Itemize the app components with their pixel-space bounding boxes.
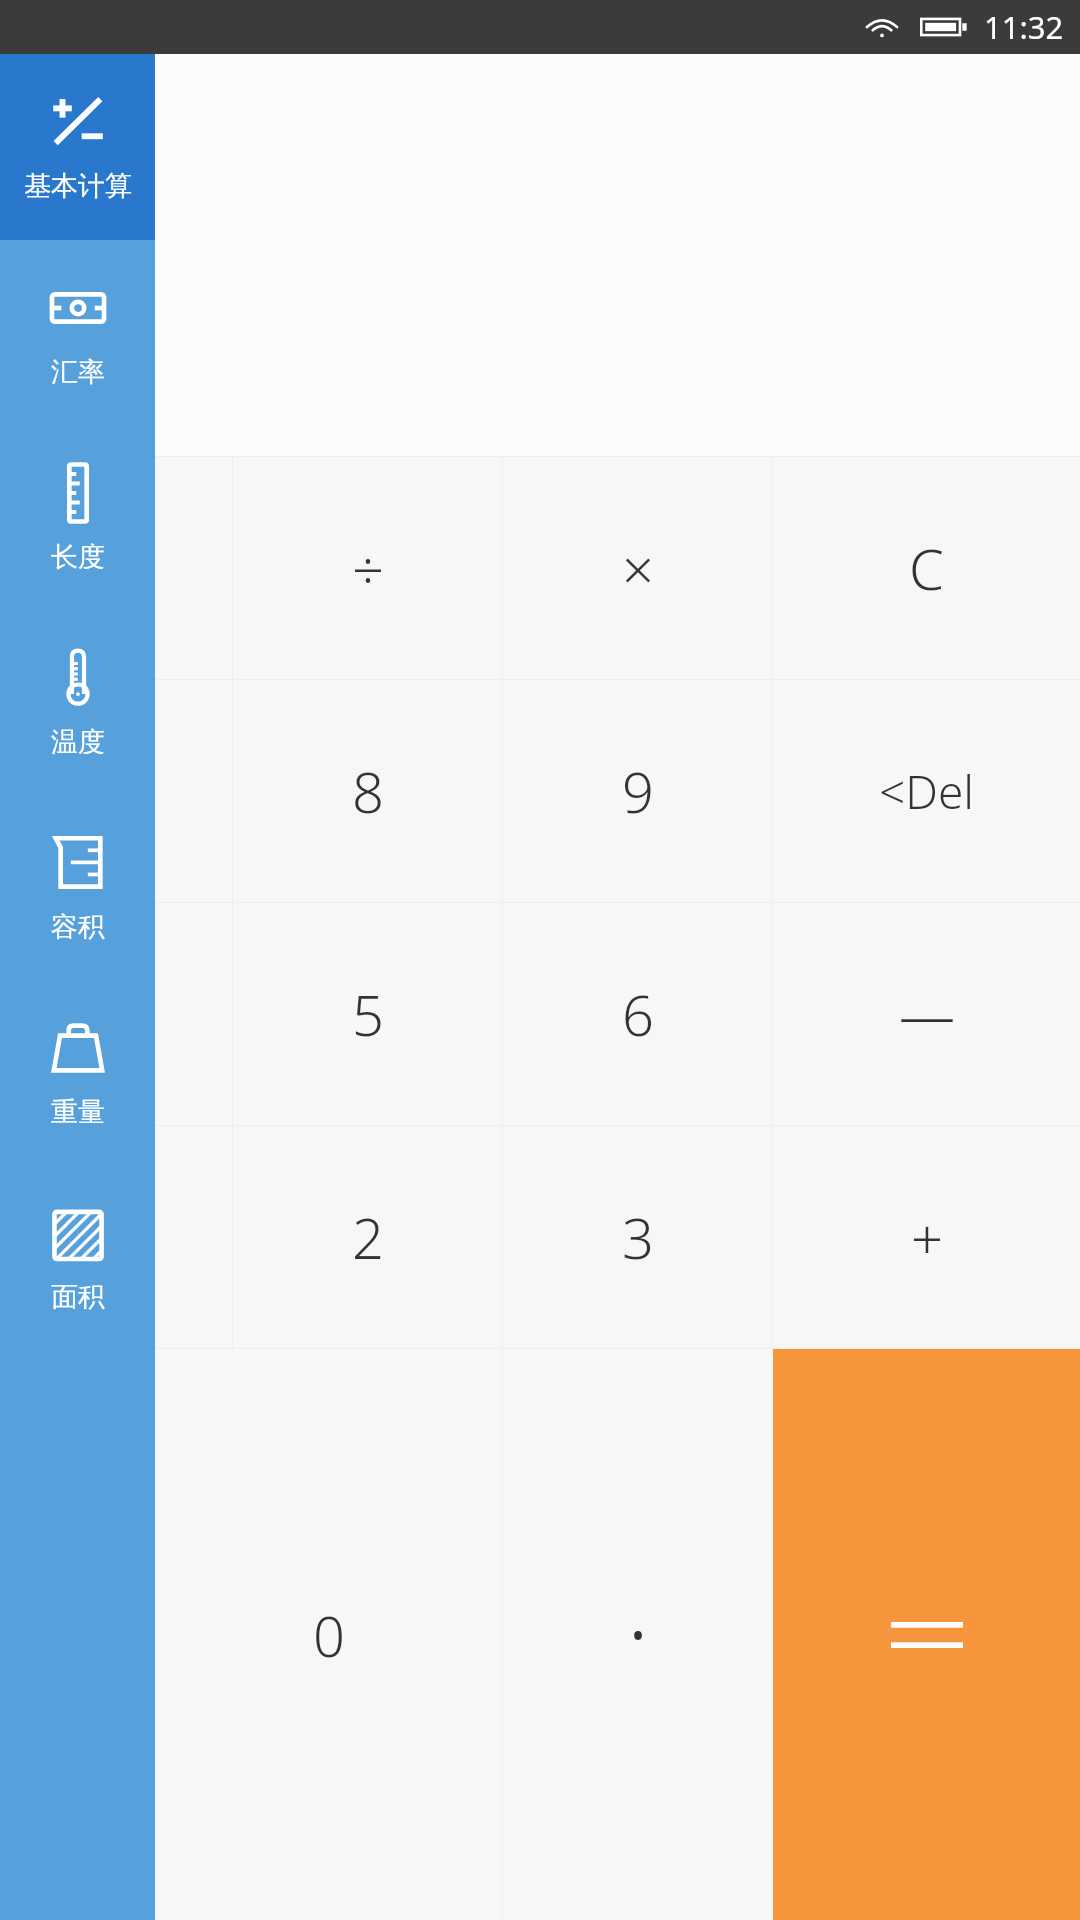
button[interactable]: 5 [233,903,502,1125]
button[interactable]: 3 [503,1126,772,1348]
button[interactable]: • [503,1349,773,1920]
button[interactable]: 0 [155,1349,502,1920]
button[interactable]: 2 [233,1126,502,1348]
staticText: × [622,530,654,606]
button[interactable]: 容积 [0,795,155,980]
staticText: • [629,1602,648,1667]
staticText: 11:32 [984,6,1064,48]
button[interactable]: + [773,1126,1080,1348]
staticText: C [909,530,944,606]
button[interactable]: ÷ [233,457,502,679]
button[interactable]: 8 [233,680,502,902]
button[interactable]: 温度 [0,610,155,795]
staticText: 9 [622,753,654,829]
button[interactable]: 9 [503,680,772,902]
staticText: 0 [313,1597,345,1673]
other: Wi-Fi [864,13,900,41]
staticText: 3 [622,1199,654,1275]
staticText: 容积 [51,910,105,944]
button[interactable]: C [773,457,1080,679]
staticText: + [911,1199,943,1275]
staticText: 面积 [51,1280,105,1314]
button[interactable]: 汇率 [0,240,155,425]
button[interactable]: <Del [773,680,1080,902]
staticText: — [899,976,955,1052]
staticText: 8 [352,753,384,829]
staticText: 6 [622,976,654,1052]
button[interactable]: × [503,457,772,679]
staticText: 重量 [51,1095,105,1129]
button[interactable]: 基本计算 [0,54,155,240]
staticText: <Del [879,760,975,823]
button[interactable]: 面积 [0,1165,155,1350]
staticText: 温度 [51,725,105,759]
button[interactable]: 长度 [0,425,155,610]
staticText: 5 [352,976,384,1052]
button[interactable]: 重量 [0,980,155,1165]
button[interactable]: — [773,903,1080,1125]
staticText: ÷ [352,530,384,606]
other: Battery [920,14,968,40]
staticText: 长度 [51,540,105,574]
staticText: 基本计算 [24,169,132,203]
button[interactable]: 6 [503,903,772,1125]
staticText: 汇率 [51,355,105,389]
staticText: 2 [352,1199,384,1275]
button[interactable]: Equals [773,1349,1080,1920]
